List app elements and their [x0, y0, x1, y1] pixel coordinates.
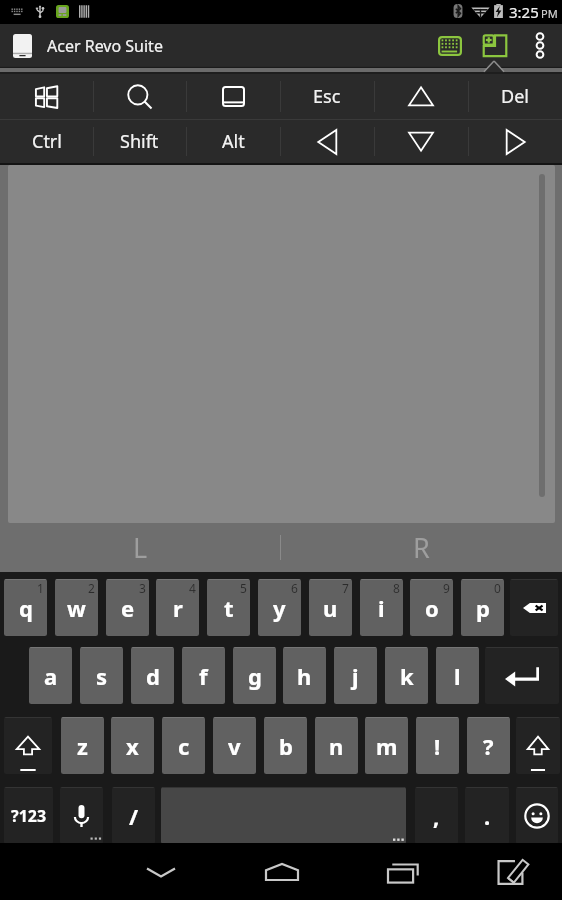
button[interactable]: r — [156, 579, 199, 636]
button[interactable]: Esc — [280, 74, 374, 119]
button[interactable]: h — [283, 647, 326, 704]
button[interactable]: left — [280, 120, 374, 163]
staticText: 2 — [88, 580, 95, 596]
staticText: 3 — [139, 580, 146, 596]
staticText: / — [129, 801, 139, 831]
button[interactable]: Space — [161, 787, 406, 844]
button[interactable]: Emoji — [516, 787, 558, 844]
staticText: k — [400, 661, 414, 691]
staticText: z — [77, 731, 88, 761]
staticText: j — [352, 661, 359, 691]
button[interactable]: Shift — [516, 717, 560, 774]
button[interactable]: right — [468, 120, 562, 163]
button[interactable]: g — [233, 647, 276, 704]
staticText: y — [273, 593, 286, 623]
button[interactable]: Alt — [186, 120, 280, 163]
button[interactable]: s — [80, 647, 123, 704]
staticText: L — [133, 529, 148, 566]
staticText: l — [454, 661, 461, 691]
button[interactable]: p — [461, 579, 504, 636]
button[interactable]: u — [309, 579, 352, 636]
staticText: o — [425, 593, 439, 623]
button[interactable]: i — [360, 579, 403, 636]
button[interactable]: Right click — [281, 523, 562, 572]
button[interactable]: e — [106, 579, 149, 636]
staticText: 7 — [342, 580, 349, 596]
staticText: n — [329, 731, 344, 761]
button[interactable]: y — [258, 579, 301, 636]
button[interactable]: ? — [467, 717, 510, 774]
staticText: R — [413, 529, 430, 566]
staticText: d — [146, 661, 160, 691]
button[interactable]: n — [315, 717, 358, 774]
button[interactable]: Change keyboard — [483, 849, 541, 895]
staticText: 0 — [494, 580, 501, 596]
button[interactable]: New session — [472, 24, 517, 67]
button[interactable]: Backspace — [510, 579, 558, 636]
button[interactable]: Voice input — [60, 787, 103, 844]
button[interactable]: win — [0, 74, 93, 119]
button[interactable]: t — [207, 579, 250, 636]
button[interactable]: , — [415, 787, 458, 844]
staticText: t — [224, 593, 234, 623]
staticText: PM — [541, 6, 558, 21]
staticText: a — [44, 661, 58, 691]
staticText: b — [279, 731, 293, 761]
button[interactable]: v — [213, 717, 256, 774]
button[interactable]: up — [374, 74, 468, 119]
button[interactable]: b — [264, 717, 307, 774]
button[interactable]: w — [55, 579, 98, 636]
staticText: 1 — [37, 580, 44, 596]
button[interactable]: Shift — [93, 120, 186, 163]
button[interactable]: search — [93, 74, 186, 119]
staticText: p — [476, 593, 490, 623]
staticText: 9 — [443, 580, 450, 596]
staticText: Alt — [222, 129, 245, 154]
button[interactable]: Hide keyboard — [132, 849, 190, 895]
staticText: f — [199, 661, 208, 691]
button[interactable]: m — [365, 717, 408, 774]
staticText: v — [228, 731, 241, 761]
button[interactable]: Enter — [485, 647, 559, 704]
staticText: Ctrl — [32, 129, 62, 154]
staticText: h — [297, 661, 312, 691]
button[interactable]: Show keyboard — [427, 24, 472, 67]
staticText: Acer Revo Suite — [47, 35, 163, 57]
button[interactable]: z — [61, 717, 104, 774]
button[interactable]: Left click — [0, 523, 280, 572]
button[interactable]: Shift — [4, 717, 52, 774]
button[interactable]: x — [111, 717, 154, 774]
button[interactable]: / — [112, 787, 155, 844]
staticText: e — [121, 593, 135, 623]
staticText: r — [173, 593, 183, 623]
button[interactable]: o — [410, 579, 453, 636]
staticText: w — [67, 593, 86, 623]
button[interactable]: d — [131, 647, 174, 704]
button[interactable]: l — [436, 647, 479, 704]
button[interactable]: c — [162, 717, 205, 774]
staticText: , — [433, 801, 440, 831]
button[interactable]: j — [334, 647, 377, 704]
button[interactable]: q — [4, 579, 47, 636]
button[interactable]: ?123 — [4, 787, 53, 844]
button[interactable]: Home — [253, 849, 311, 895]
staticText: 5 — [240, 580, 247, 596]
staticText: 3:25 — [509, 2, 539, 22]
button[interactable]: down — [374, 120, 468, 163]
button[interactable]: More options — [519, 24, 561, 67]
button[interactable]: window — [186, 74, 280, 119]
staticText: c — [178, 731, 190, 761]
button[interactable]: ! — [416, 717, 459, 774]
button[interactable]: Del — [468, 74, 562, 119]
button[interactable]: a — [29, 647, 72, 704]
staticText: x — [126, 731, 139, 761]
staticText: 8 — [393, 580, 400, 596]
button[interactable]: . — [465, 787, 509, 844]
button[interactable]: Recent apps — [373, 849, 431, 895]
button[interactable]: k — [385, 647, 428, 704]
staticText: ? — [483, 731, 494, 761]
staticText: Del — [501, 84, 529, 109]
button[interactable]: Ctrl — [0, 120, 93, 163]
button[interactable]: f — [182, 647, 225, 704]
